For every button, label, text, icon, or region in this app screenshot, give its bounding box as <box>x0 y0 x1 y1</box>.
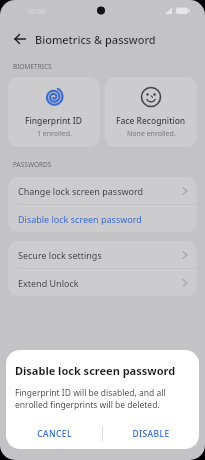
staticText: Face Recognition <box>116 115 186 127</box>
staticText: Change lock screen password <box>18 185 181 197</box>
button[interactable]: Extend Unlock <box>8 269 197 296</box>
staticText: Disable lock screen password <box>15 363 176 378</box>
staticText: 1 enrolled. <box>37 129 72 139</box>
staticText: PASSWORDS <box>13 160 52 169</box>
button[interactable]: Fingerprint ID <box>8 77 100 147</box>
button[interactable]: Disable lock screen password <box>8 205 197 232</box>
button[interactable]: Face Recognition <box>105 77 197 147</box>
staticText: BIOMETRICS <box>13 62 52 71</box>
button[interactable]: CANCEL <box>6 418 102 449</box>
staticText: Fingerprint ID <box>25 115 83 127</box>
button[interactable]: Change lock screen password <box>8 177 197 204</box>
staticText: Extend Unlock <box>18 277 181 289</box>
button[interactable] <box>14 33 26 45</box>
staticText: 10:00 <box>27 7 45 17</box>
staticText: Fingerprint ID will be disabled, and all… <box>15 387 166 411</box>
staticText: Secure lock settings <box>18 249 181 261</box>
staticText: DISABLE <box>132 428 170 440</box>
staticText: None enrolled. <box>127 129 176 139</box>
button[interactable]: Secure lock settings <box>8 241 197 268</box>
button[interactable]: DISABLE <box>102 418 199 449</box>
staticText: Disable lock screen password <box>18 213 189 225</box>
staticText: Biometrics & password <box>35 32 156 47</box>
staticText: CANCEL <box>37 428 72 440</box>
